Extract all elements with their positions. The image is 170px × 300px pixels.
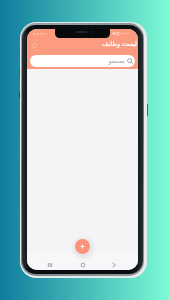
button[interactable]: Back <box>110 261 118 269</box>
staticText: جستجو <box>108 58 125 64</box>
staticText: لیست وظایف <box>102 39 137 47</box>
button[interactable]: Recents <box>46 261 54 269</box>
button[interactable]: Add task <box>75 239 90 254</box>
button[interactable]: جستجو <box>30 55 135 67</box>
button[interactable]: Home <box>79 261 87 269</box>
button[interactable]: Settings <box>31 42 38 49</box>
